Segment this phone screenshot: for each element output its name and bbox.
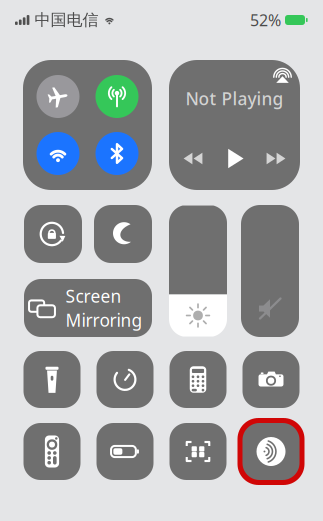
button[interactable]: Volume (241, 205, 299, 337)
button[interactable]: Flashlight (23, 351, 80, 408)
button[interactable]: Airplane Mode (36, 75, 79, 118)
button[interactable]: Rewind (183, 148, 203, 168)
button[interactable]: Cellular Data (95, 75, 138, 118)
button[interactable]: Low Power Mode (96, 423, 153, 480)
staticText: Mirroring (65, 308, 142, 331)
staticText: 中国电信 (34, 10, 98, 30)
button[interactable]: Camera (242, 351, 299, 408)
button[interactable]: Brightness (169, 205, 227, 337)
button[interactable]: AirPlay (273, 65, 292, 84)
staticText: Not Playing (185, 87, 283, 110)
button[interactable]: Apple TV Remote (23, 423, 80, 480)
button[interactable]: Wi-Fi (36, 132, 79, 175)
staticText: 52% (250, 9, 281, 31)
button[interactable]: NFC Tag Reader (242, 423, 299, 480)
staticText: Screen (65, 284, 121, 307)
button[interactable]: Calculator (169, 351, 226, 408)
button[interactable]: Rotation Lock (24, 205, 82, 263)
button[interactable]: Do Not Disturb (94, 205, 152, 263)
button[interactable]: Timer (96, 351, 153, 408)
button[interactable]: Play (224, 148, 245, 169)
button[interactable]: Bluetooth (95, 132, 138, 175)
button[interactable]: Screen (24, 279, 152, 337)
button[interactable]: Fast Forward (266, 148, 286, 168)
button[interactable]: Code Scanner (169, 423, 226, 480)
